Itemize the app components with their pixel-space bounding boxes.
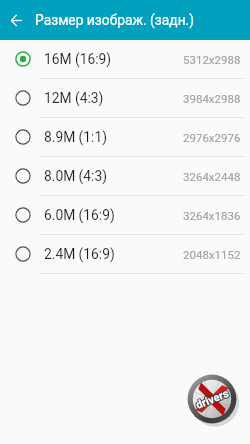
button[interactable]: 6.0M (16:9) — [0, 196, 250, 234]
staticText: 16M (16:9) — [44, 51, 112, 67]
staticText: 8.9M (1:1) — [44, 129, 107, 145]
staticText: 3264x2448 — [183, 170, 241, 183]
staticText: drivers — [194, 386, 231, 411]
staticText: drivers — [194, 388, 232, 413]
staticText: 2048x1152 — [183, 248, 241, 261]
staticText: 6.0M (16:9) — [44, 207, 115, 223]
button[interactable]: 12M (4:3) — [0, 79, 250, 117]
staticText: drivers — [193, 387, 230, 412]
staticText: Размер изображ. (задн.) — [35, 12, 195, 28]
button[interactable]: 8.9M (1:1) — [0, 118, 250, 156]
button[interactable]: 2.4M (16:9) — [0, 235, 250, 273]
staticText: 2976x2976 — [183, 131, 241, 144]
staticText: drivers — [193, 386, 230, 411]
staticText: 12M (4:3) — [44, 90, 104, 106]
staticText: drivers — [195, 386, 232, 411]
button[interactable]: Back — [0, 0, 35, 40]
staticText: drivers — [194, 387, 231, 412]
other: Watermark — [186, 373, 238, 425]
staticText: 5312x2988 — [183, 53, 241, 66]
staticText: 8.0M (4:3) — [44, 168, 107, 184]
staticText: 3264x1836 — [183, 209, 241, 222]
staticText: 3984x2988 — [183, 92, 241, 105]
button[interactable]: 8.0M (4:3) — [0, 157, 250, 195]
staticText: drivers — [193, 388, 231, 413]
staticText: 2.4M (16:9) — [44, 246, 115, 262]
staticText: drivers — [194, 385, 232, 411]
button[interactable]: 16M (16:9) — [0, 40, 250, 78]
staticText: drivers — [195, 387, 233, 412]
